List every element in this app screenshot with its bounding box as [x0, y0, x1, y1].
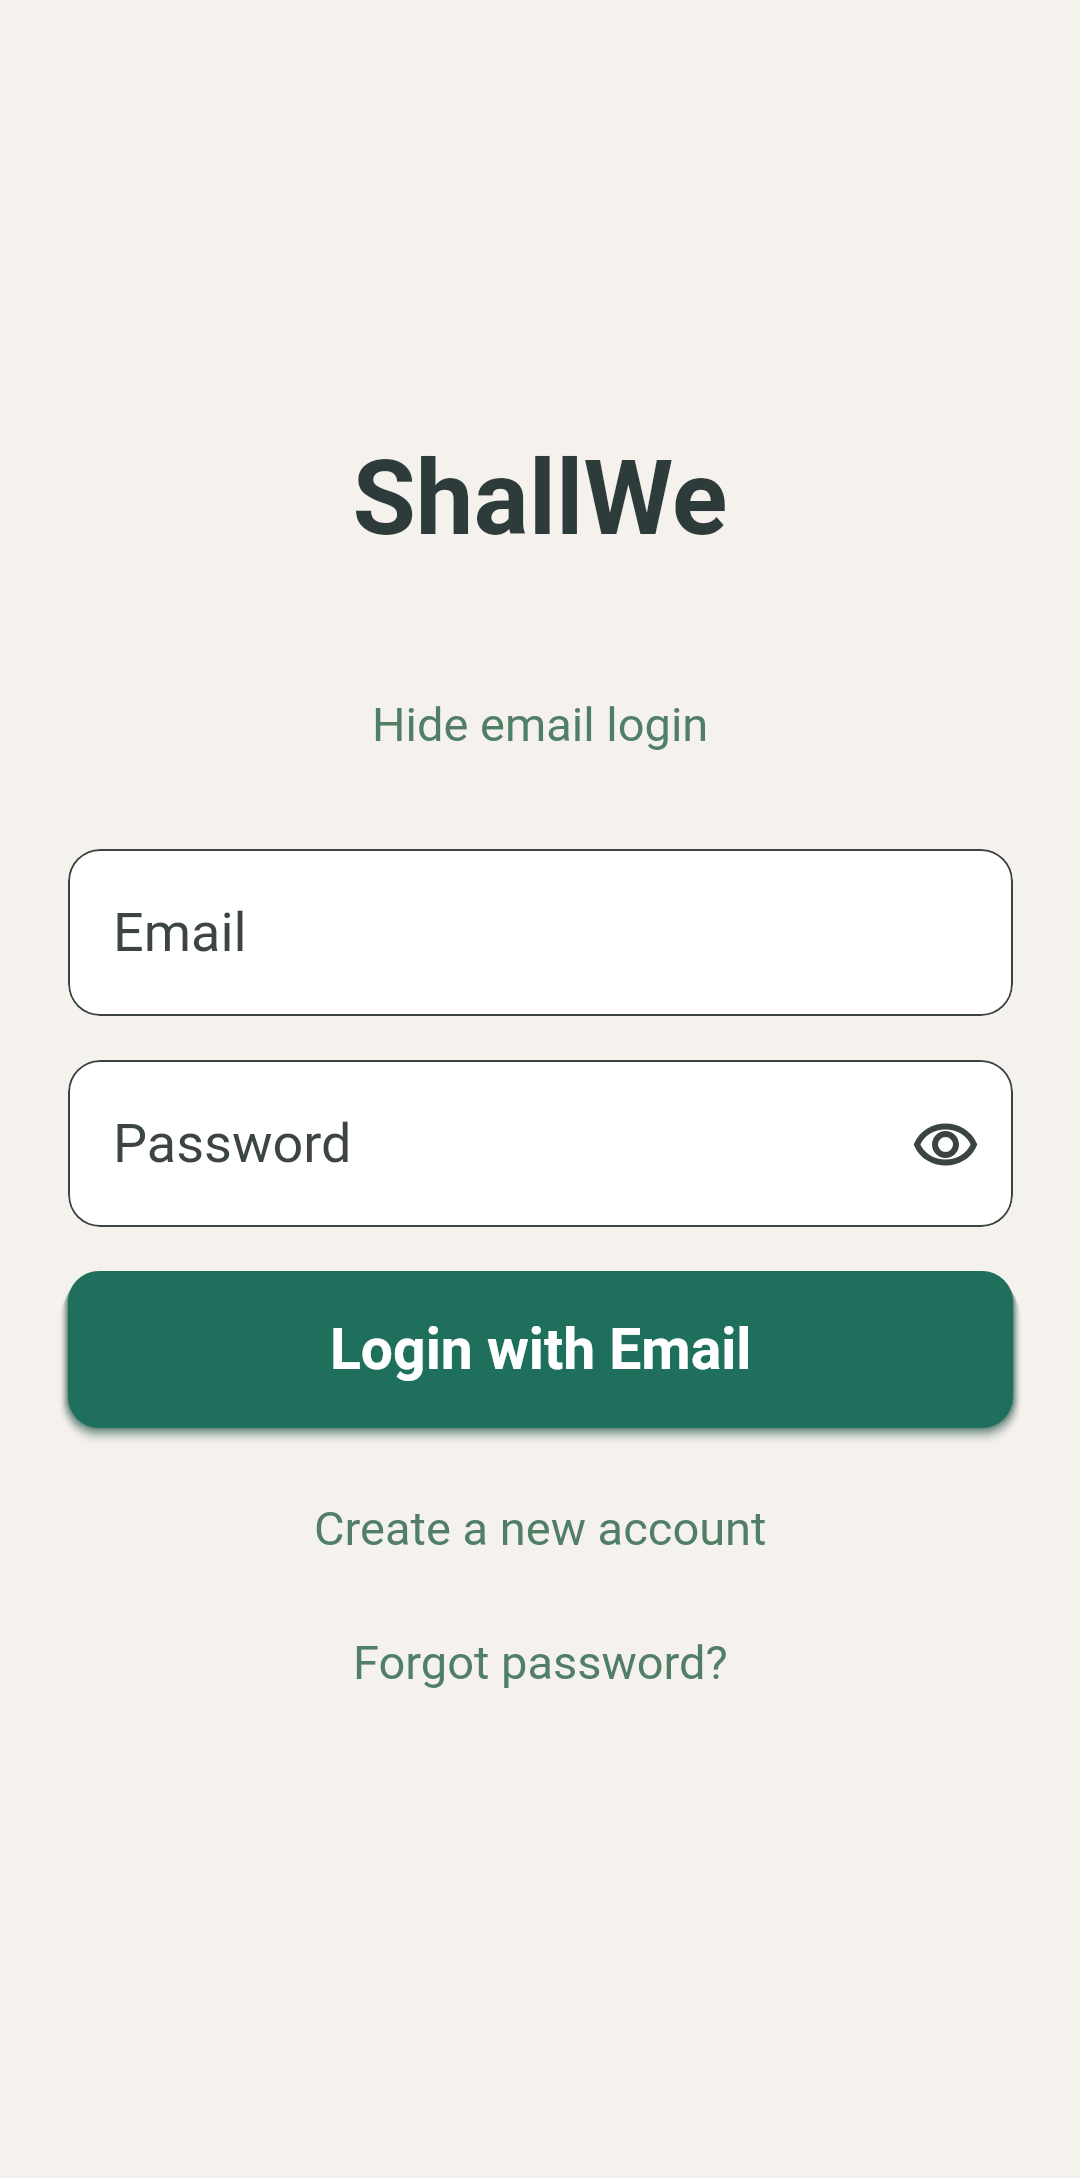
button[interactable]: Show password [897, 1096, 993, 1192]
staticText: ShallWe [352, 438, 728, 559]
button[interactable]: Forgot password? [337, 1625, 744, 1700]
staticText: Login with Email [330, 1316, 752, 1383]
staticText: Email [113, 901, 247, 964]
button[interactable]: Hide email login [356, 689, 725, 760]
staticText: Password [113, 1112, 352, 1175]
staticText: Forgot password? [353, 1635, 728, 1690]
button[interactable]: Login with Email [68, 1271, 1013, 1428]
staticText: Hide email login [372, 697, 709, 752]
button[interactable]: Email [68, 849, 1013, 1016]
button[interactable]: Password [68, 1060, 1013, 1227]
staticText: Create a new account [314, 1501, 767, 1556]
button[interactable]: Create a new account [298, 1491, 783, 1566]
